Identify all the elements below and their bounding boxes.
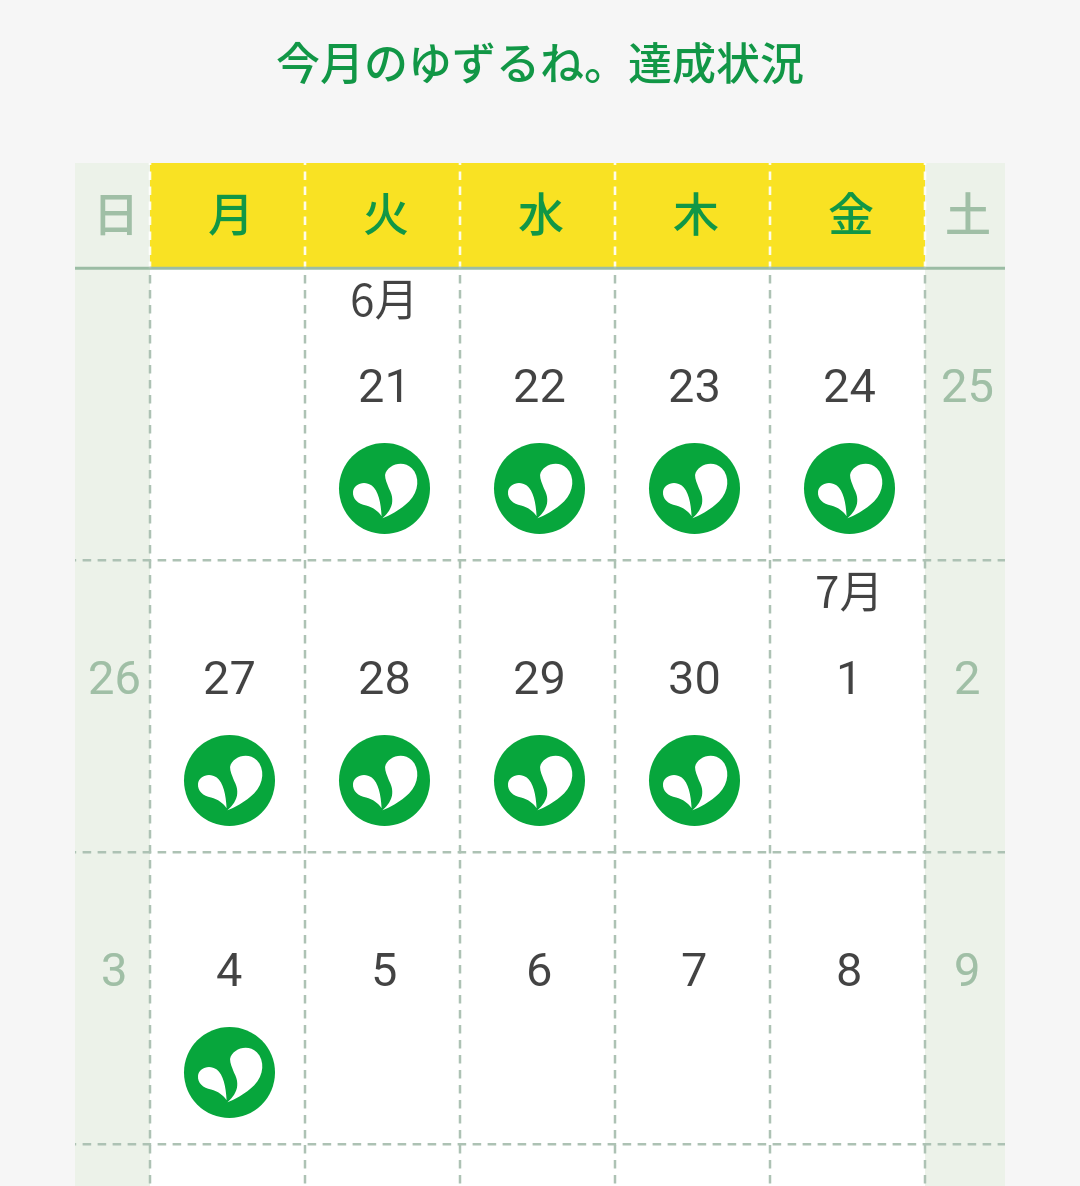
- staticText: 木: [673, 178, 719, 245]
- staticText: 22: [513, 358, 566, 413]
- button[interactable]: 12: [305, 1144, 460, 1186]
- button[interactable]: 3: [75, 852, 150, 1144]
- staticText: 金: [828, 178, 874, 245]
- staticText: 1: [836, 650, 863, 705]
- button[interactable]: 10: [75, 1144, 150, 1186]
- staticText: 28: [358, 650, 411, 705]
- button[interactable]: 11: [150, 1144, 305, 1186]
- button[interactable]: 2: [925, 560, 1005, 852]
- staticText: 6月: [350, 265, 419, 329]
- other: ゆずるね達成: [804, 443, 895, 534]
- staticText: 3: [101, 942, 128, 997]
- button[interactable]: 月: [150, 163, 305, 267]
- other: ゆずるね達成: [649, 443, 740, 534]
- button[interactable]: 5: [305, 852, 460, 1144]
- button[interactable]: 25: [925, 268, 1005, 560]
- staticText: 26: [88, 650, 141, 705]
- staticText: 6: [526, 942, 553, 997]
- button[interactable]: 6月: [305, 268, 460, 560]
- staticText: 土: [945, 178, 991, 245]
- staticText: 5: [371, 942, 398, 997]
- button[interactable]: 水: [460, 163, 615, 267]
- other: ゆずるね達成: [494, 443, 585, 534]
- button[interactable]: 13: [460, 1144, 615, 1186]
- staticText: 火: [363, 178, 409, 245]
- staticText: 月: [208, 178, 254, 245]
- button[interactable]: 28: [305, 560, 460, 852]
- button[interactable]: 8: [770, 852, 925, 1144]
- staticText: 7月: [815, 557, 884, 621]
- other: ゆずるね達成: [649, 735, 740, 826]
- other: ゆずるね達成: [184, 735, 275, 826]
- staticText: 7: [681, 942, 708, 997]
- other: ゆずるね達成: [339, 443, 430, 534]
- button[interactable]: 23: [615, 268, 770, 560]
- button[interactable]: 27: [150, 560, 305, 852]
- button[interactable]: 木: [615, 163, 770, 267]
- staticText: 8: [836, 942, 863, 997]
- staticText: 9: [954, 942, 981, 997]
- button[interactable]: 7: [615, 852, 770, 1144]
- staticText: 2: [954, 650, 981, 705]
- button[interactable]: 15: [770, 1144, 925, 1186]
- other: ゆずるね達成: [184, 1027, 275, 1118]
- staticText: 24: [823, 358, 876, 413]
- button[interactable]: 金: [770, 163, 925, 267]
- button[interactable]: 7月: [770, 560, 925, 852]
- staticText: 23: [668, 358, 721, 413]
- button[interactable]: 26: [75, 560, 150, 852]
- button[interactable]: 4: [150, 852, 305, 1144]
- button[interactable]: 土: [925, 163, 1005, 267]
- other: ゆずるね達成: [494, 735, 585, 826]
- button[interactable]: 6: [460, 852, 615, 1144]
- button[interactable]: 22: [460, 268, 615, 560]
- button[interactable]: 16: [925, 1144, 1005, 1186]
- other: ゆずるね達成: [339, 735, 430, 826]
- button[interactable]: 24: [770, 268, 925, 560]
- staticText: 29: [513, 650, 566, 705]
- staticText: 21: [358, 358, 411, 413]
- staticText: 水: [518, 178, 564, 245]
- staticText: 日: [93, 178, 139, 245]
- staticText: 4: [216, 942, 243, 997]
- staticText: 今月のゆずるね。達成状況: [276, 29, 804, 93]
- staticText: 30: [668, 650, 721, 705]
- button[interactable]: 9: [925, 852, 1005, 1144]
- button[interactable]: 日: [75, 163, 150, 267]
- staticText: 27: [203, 650, 256, 705]
- button[interactable]: 火: [305, 163, 460, 267]
- button[interactable]: 14: [615, 1144, 770, 1186]
- button[interactable]: 29: [460, 560, 615, 852]
- staticText: 25: [941, 358, 994, 413]
- button[interactable]: 30: [615, 560, 770, 852]
